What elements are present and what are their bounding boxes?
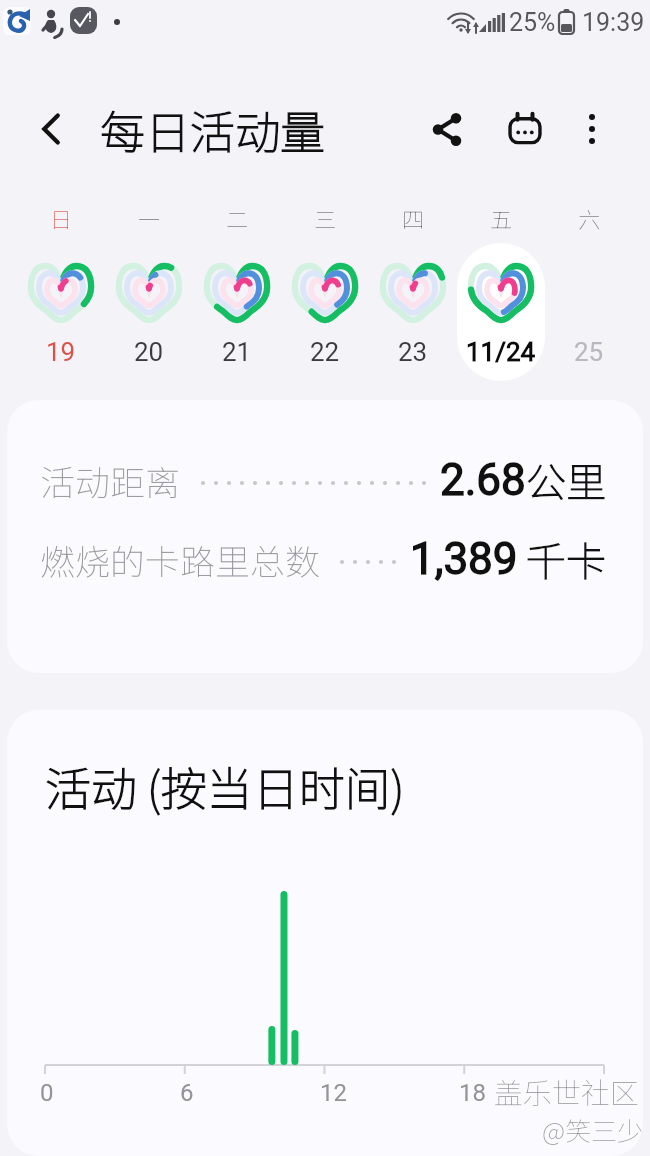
staticText: 22: [310, 337, 340, 367]
staticText: 四: [402, 202, 425, 232]
staticText: @笑三少: [542, 1111, 644, 1149]
staticText: 25: [574, 337, 604, 367]
staticText: 23: [398, 337, 428, 367]
staticText: 五: [490, 202, 513, 232]
button[interactable]: 19: [17, 243, 105, 381]
staticText: 一: [138, 202, 161, 232]
button[interactable]: 活动距离: [7, 400, 643, 673]
staticText: 千卡: [526, 530, 606, 588]
staticText: 活动距离: [40, 455, 181, 506]
staticText: 六: [578, 202, 601, 232]
staticText: 6: [180, 1079, 194, 1107]
staticText: 11/24: [466, 337, 536, 367]
staticText: 活动 (按当日时间): [45, 753, 405, 820]
button[interactable]: 11/24: [457, 243, 545, 381]
staticText: 21: [222, 337, 252, 367]
button[interactable]: Calendar: [497, 101, 553, 157]
staticText: 公里: [526, 451, 606, 509]
staticText: 燃烧的卡路里总数: [40, 534, 321, 585]
button[interactable]: More options: [569, 106, 615, 152]
staticText: 25%: [509, 8, 556, 37]
staticText: 1,389: [410, 533, 518, 585]
staticText: 19:39: [582, 8, 645, 37]
staticText: 12: [320, 1079, 347, 1107]
button[interactable]: 23: [369, 243, 457, 381]
staticText: 18: [459, 1079, 486, 1107]
button[interactable]: Share: [419, 101, 475, 157]
staticText: 每日活动量: [100, 97, 326, 162]
staticText: 2.68: [440, 454, 526, 506]
button[interactable]: Back: [24, 102, 78, 156]
staticText: 二: [226, 202, 249, 232]
staticText: 0: [40, 1079, 54, 1107]
button[interactable]: 22: [281, 243, 369, 381]
staticText: 三: [314, 202, 337, 232]
staticText: 盖乐世社区: [494, 1070, 640, 1112]
button[interactable]: 25: [545, 243, 633, 381]
staticText: 20: [134, 337, 164, 367]
button[interactable]: 21: [193, 243, 281, 381]
staticText: 日: [50, 202, 73, 232]
staticText: 19: [46, 337, 76, 367]
button[interactable]: 20: [105, 243, 193, 381]
